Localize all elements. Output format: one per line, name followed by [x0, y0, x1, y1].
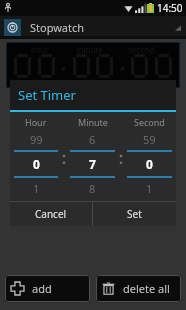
button[interactable]: Cancel	[10, 202, 92, 226]
staticText: Hour	[25, 116, 47, 128]
staticText: hour	[31, 44, 50, 55]
button[interactable]: Second	[123, 116, 176, 199]
staticText: delete all	[123, 281, 170, 296]
staticText: 0	[33, 156, 40, 172]
staticText: Set Timer	[18, 86, 76, 104]
staticText: Set	[127, 207, 142, 221]
button[interactable]: Set	[93, 202, 176, 226]
button[interactable]: add	[5, 275, 90, 302]
staticText: 59	[143, 132, 156, 147]
button[interactable]: App icon	[4, 19, 21, 36]
staticText: 0	[146, 156, 153, 172]
button[interactable]: Minute	[66, 116, 119, 199]
staticText: 1	[33, 181, 40, 196]
staticText: 14:50	[157, 1, 183, 15]
staticText: 7	[89, 156, 96, 172]
button[interactable]: delete all	[96, 275, 181, 302]
button[interactable]: More options	[172, 22, 184, 34]
staticText: add	[32, 281, 52, 296]
button[interactable]: Hour	[10, 116, 62, 199]
staticText: Second	[134, 116, 165, 128]
staticText: Minute	[78, 116, 108, 128]
staticText: second	[128, 44, 155, 55]
staticText: Stopwatch	[30, 20, 85, 35]
staticText: 6	[89, 132, 96, 147]
staticText: 8	[89, 181, 96, 196]
staticText: 1	[146, 181, 153, 196]
staticText: 99	[30, 132, 43, 147]
staticText: Cancel	[35, 207, 67, 221]
staticText: minute	[76, 44, 103, 55]
